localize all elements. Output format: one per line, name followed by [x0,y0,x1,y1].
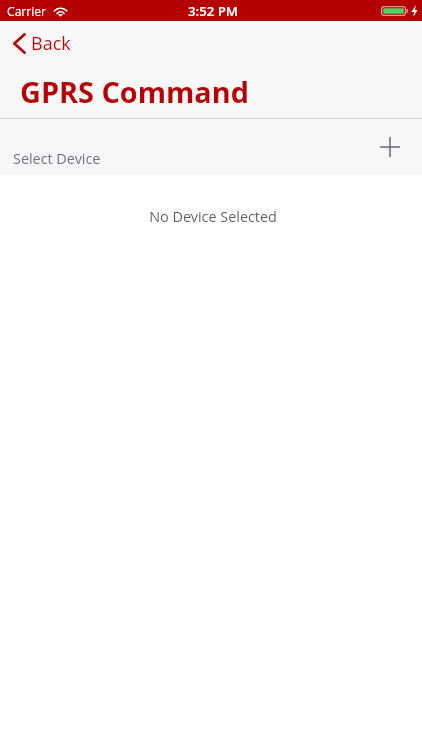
staticText: Carrier [7,3,47,19]
staticText: No Device Selected [149,207,277,227]
button[interactable]: Select Device [0,119,422,175]
button[interactable]: Back [0,31,81,55]
staticText: Back [31,31,71,55]
button[interactable]: Add device [373,130,406,163]
staticText: GPRS Command [20,72,249,111]
staticText: Select Device [13,149,101,169]
staticText: 3:52 PM [188,2,238,20]
